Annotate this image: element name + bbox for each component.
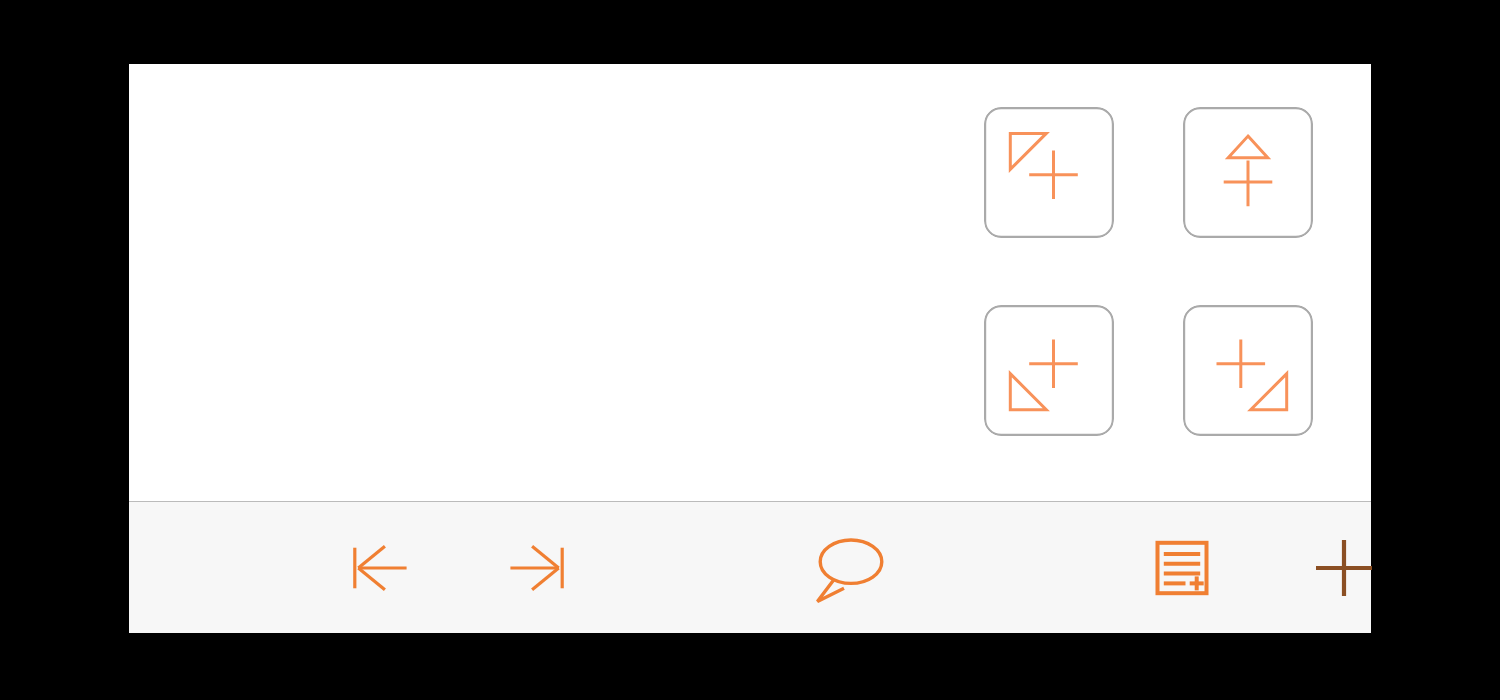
- button[interactable]: Crop top left: [984, 107, 1114, 238]
- button[interactable]: New note: [1142, 528, 1222, 608]
- button[interactable]: Crop bottom right: [1183, 305, 1313, 436]
- button[interactable]: Skip to start: [340, 528, 420, 608]
- button[interactable]: Add: [1304, 528, 1384, 608]
- button[interactable]: Comments: [811, 528, 891, 608]
- button[interactable]: Crop bottom left: [984, 305, 1114, 436]
- button[interactable]: Insert above: [1183, 107, 1313, 238]
- button[interactable]: Skip to end: [497, 528, 577, 608]
